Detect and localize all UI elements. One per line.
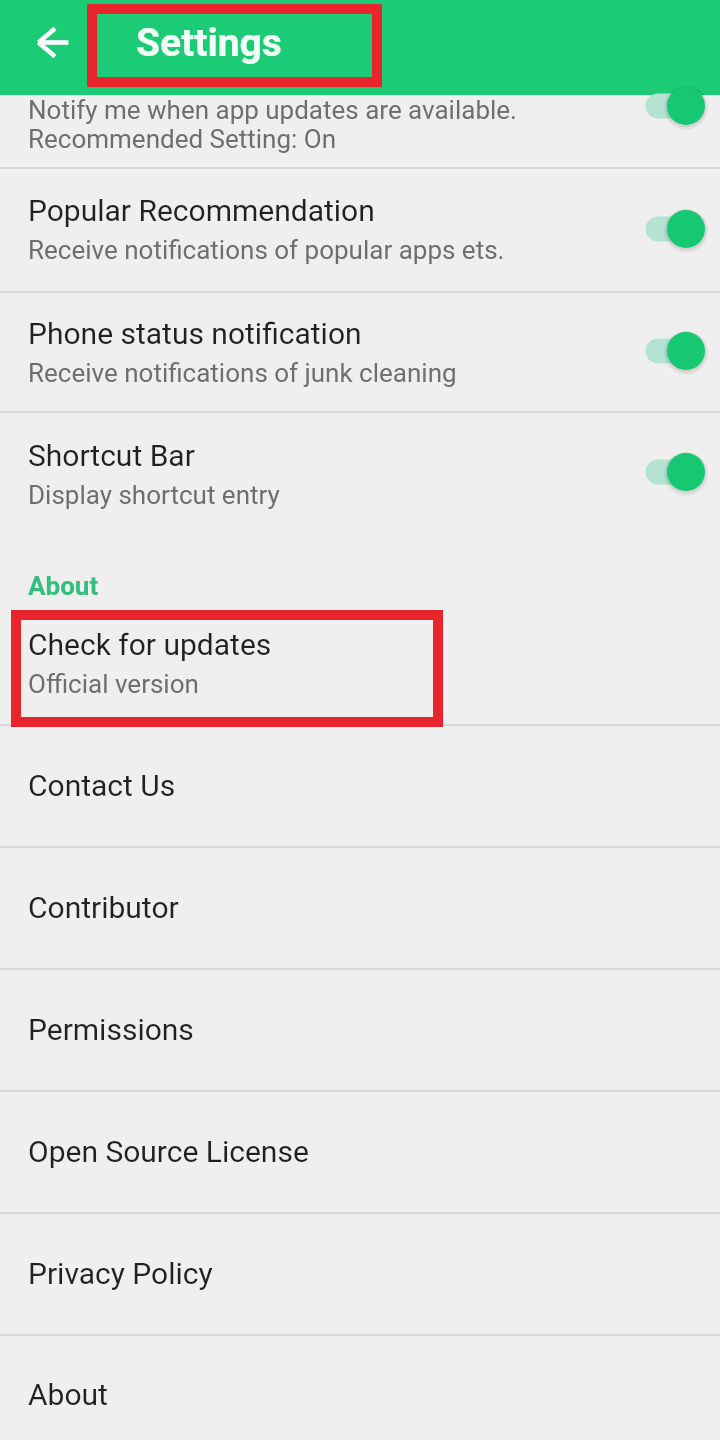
staticText: Official version [28, 669, 199, 699]
button[interactable]: Shortcut Bar [0, 413, 720, 533]
button[interactable]: Permissions [0, 970, 720, 1090]
staticText: About [28, 571, 99, 601]
staticText: Receive notifications of junk cleaning [28, 358, 457, 388]
button[interactable]: Back [0, 0, 95, 95]
button[interactable]: Contact Us [0, 726, 720, 846]
staticText: Privacy Policy [28, 1256, 213, 1291]
button[interactable]: Toggle Phone status notification [625, 293, 720, 411]
staticText: Contributor [28, 890, 179, 925]
button[interactable]: Popular Recommendation [0, 169, 720, 291]
button[interactable]: Toggle Popular Recommendation [625, 169, 720, 291]
staticText: Contact Us [28, 768, 176, 803]
staticText: Popular Recommendation [28, 193, 375, 228]
staticText: Phone status notification [28, 316, 362, 351]
button[interactable]: Toggle Shortcut Bar [625, 413, 720, 533]
staticText: Settings [136, 20, 282, 66]
button[interactable]: Phone status notification [0, 293, 720, 411]
button[interactable]: About [0, 1336, 720, 1440]
staticText: Shortcut Bar [28, 438, 195, 473]
staticText: About [28, 1377, 108, 1412]
staticText: Open Source License [28, 1134, 309, 1169]
button[interactable]: Check for updates [0, 604, 720, 724]
staticText: Permissions [28, 1012, 194, 1047]
button[interactable]: Privacy Policy [0, 1214, 720, 1334]
staticText: Check for updates [28, 627, 272, 662]
staticText: Receive notifications of popular apps et… [28, 235, 505, 265]
button[interactable]: Contributor [0, 848, 720, 968]
button[interactable]: Toggle app update notification [625, 80, 720, 132]
staticText: Display shortcut entry [28, 480, 280, 510]
staticText: Notify me when app updates are available… [28, 95, 517, 155]
button[interactable]: Open Source License [0, 1092, 720, 1212]
